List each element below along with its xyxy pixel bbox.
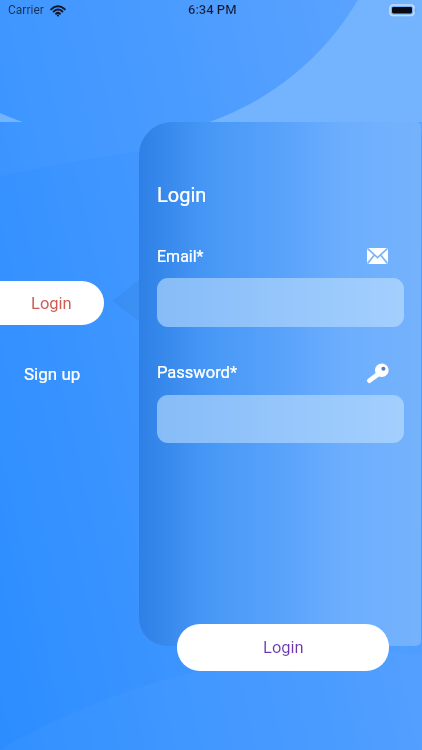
staticText: Login	[263, 638, 304, 657]
staticText: Email*	[157, 247, 204, 266]
staticText: Password*	[157, 363, 237, 382]
staticText: 6:34 PM	[188, 2, 237, 17]
button[interactable]: Sign up	[0, 352, 104, 396]
button[interactable]	[157, 278, 404, 327]
staticText: Login	[157, 183, 207, 206]
button[interactable]: Email	[366, 245, 390, 267]
staticText: Sign up	[24, 364, 81, 384]
button[interactable]: Password	[365, 361, 391, 385]
staticText: Login	[31, 294, 72, 313]
button[interactable]: Login	[177, 624, 389, 671]
staticText: Carrier	[8, 3, 44, 17]
button[interactable]	[157, 395, 404, 443]
button[interactable]: Login	[0, 281, 104, 325]
